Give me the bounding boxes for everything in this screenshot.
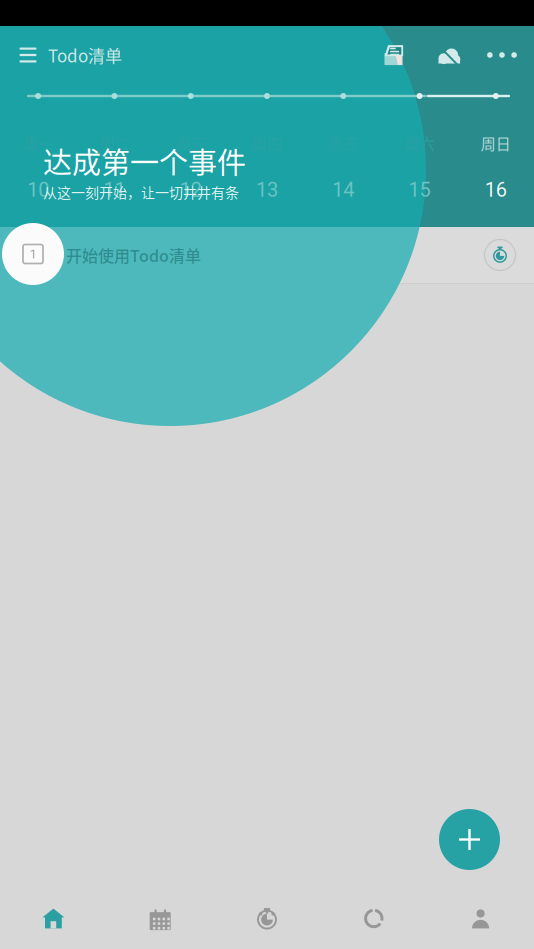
button[interactable]: Complete task bbox=[11, 232, 55, 276]
staticText: 周五 bbox=[328, 132, 358, 154]
button[interactable]: 开始使用Todo清单 bbox=[0, 0, 330, 44]
staticText: 周六 bbox=[405, 132, 435, 154]
staticText: 周日 bbox=[481, 132, 511, 154]
button[interactable]: Calendar bbox=[107, 888, 214, 949]
button[interactable]: 周日 bbox=[458, 134, 534, 202]
button[interactable]: 周一 bbox=[0, 134, 76, 202]
button[interactable]: Add task bbox=[439, 809, 500, 870]
button[interactable]: 周五 bbox=[305, 134, 381, 202]
staticText: 开始使用Todo清单 bbox=[66, 243, 201, 267]
staticText: 1 bbox=[29, 246, 36, 262]
staticText: 周二 bbox=[99, 132, 129, 154]
staticText: 周一 bbox=[23, 132, 53, 154]
button[interactable]: Statistics bbox=[320, 888, 427, 949]
staticText: 13 bbox=[256, 178, 278, 202]
staticText: 14 bbox=[332, 178, 354, 202]
button[interactable]: Sync off bbox=[426, 32, 472, 78]
button[interactable]: More bbox=[479, 32, 525, 78]
button[interactable]: Timer bbox=[214, 888, 320, 949]
staticText: 达成第一个事件 bbox=[43, 140, 246, 182]
button[interactable]: Profile bbox=[427, 888, 534, 949]
staticText: 11 bbox=[103, 178, 125, 202]
staticText: 12 bbox=[180, 178, 202, 202]
button[interactable]: Start timer bbox=[478, 233, 522, 277]
button[interactable]: 周二 bbox=[76, 134, 153, 202]
staticText: 周三 bbox=[176, 132, 206, 154]
staticText: 15 bbox=[409, 178, 431, 202]
staticText: 16 bbox=[485, 178, 507, 202]
button[interactable]: Home bbox=[0, 888, 107, 949]
button[interactable]: Archive bbox=[371, 32, 417, 78]
staticText: 从这一刻开始，让一切井井有条 bbox=[43, 182, 239, 202]
staticText: Todo清单 bbox=[48, 43, 122, 67]
button[interactable]: Menu bbox=[5, 32, 51, 78]
staticText: 周四 bbox=[252, 132, 282, 154]
button[interactable]: 周三 bbox=[153, 134, 229, 202]
button[interactable]: 周六 bbox=[381, 134, 458, 202]
staticText: 10 bbox=[27, 178, 49, 202]
button[interactable]: Todo清单 bbox=[48, 32, 158, 78]
button[interactable]: 周四 bbox=[229, 134, 305, 202]
